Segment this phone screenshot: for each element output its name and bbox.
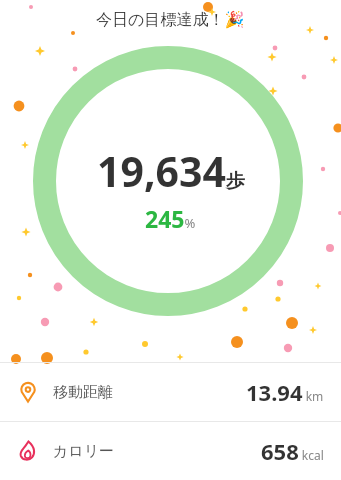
staticText: カロリー xyxy=(53,442,115,461)
other: 距離 xyxy=(16,380,40,404)
staticText: 245% xyxy=(145,203,196,234)
staticText: 658 kcal xyxy=(261,436,324,466)
staticText: 13.94 km xyxy=(246,377,324,407)
button[interactable]: カロリー xyxy=(0,422,341,480)
staticText: 移動距離 xyxy=(53,383,113,402)
staticText: 19,634歩 xyxy=(97,143,245,199)
staticText: 今日の目標達成！🎉 xyxy=(96,10,245,30)
button[interactable]: 距離 xyxy=(0,363,341,421)
other: カロリー xyxy=(16,439,40,463)
